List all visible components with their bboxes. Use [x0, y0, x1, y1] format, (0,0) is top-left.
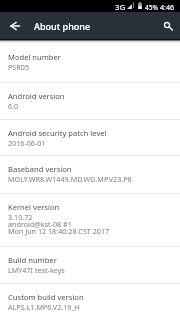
- staticText: 3G: [115, 2, 126, 12]
- button[interactable]: Baseband version: [0, 156, 180, 194]
- button[interactable]: Android security patch level: [0, 120, 180, 156]
- button[interactable]: Model number: [0, 44, 180, 83]
- staticText: Build number: [8, 255, 57, 265]
- staticText: 45%: [145, 3, 159, 12]
- staticText: Kernel version: [8, 202, 60, 212]
- button[interactable]: Search: [156, 12, 180, 39]
- staticText: 2016-06-01: [8, 138, 46, 148]
- staticText: Android security patch level: [8, 128, 107, 138]
- staticText: 3.10.72 android@kst-08 #1 Mon Jun 12 18:…: [8, 212, 110, 236]
- staticText: 6.0: [8, 101, 19, 111]
- staticText: Model number: [8, 52, 61, 62]
- staticText: About phone: [34, 20, 91, 32]
- staticText: LMY47I test-keys: [8, 265, 65, 275]
- button[interactable]: Kernel version: [0, 194, 180, 247]
- button[interactable]: Build number: [0, 247, 180, 284]
- staticText: MOLY.WR8.W1449.MD.WG.MP.V23.P8: [8, 174, 132, 184]
- staticText: 4:46: [160, 2, 175, 12]
- button[interactable]: Back: [2, 12, 26, 39]
- button[interactable]: Android version: [0, 83, 180, 120]
- button[interactable]: Custom build version: [0, 284, 180, 320]
- staticText: ALPS.L1.MP6.V2.19_H: [8, 302, 80, 312]
- staticText: PSR05: [8, 62, 29, 72]
- staticText: Baseband version: [8, 164, 72, 174]
- staticText: Custom build version: [8, 292, 84, 302]
- staticText: Android version: [8, 91, 65, 101]
